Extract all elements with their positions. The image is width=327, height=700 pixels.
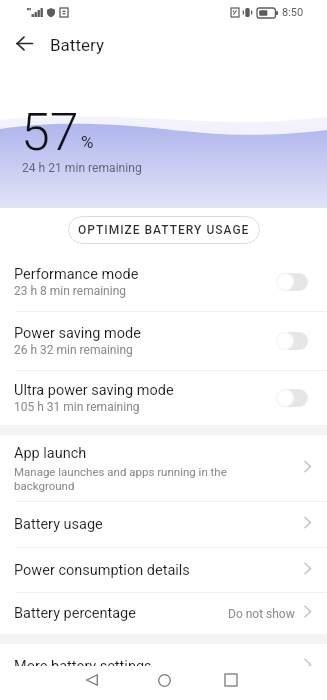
button[interactable]: OPTIMIZE BATTERY USAGE [68, 216, 260, 244]
staticText: OPTIMIZE BATTERY USAGE [78, 223, 250, 237]
staticText: Battery [50, 35, 104, 55]
staticText: Battery percentage [14, 605, 228, 622]
staticText: 24 h 21 min remaining [22, 161, 142, 175]
staticText: 57 [21, 102, 79, 163]
staticText: 26 h 32 min remaining [14, 343, 133, 357]
button[interactable]: App launch [0, 435, 327, 501]
staticText: App launch [14, 445, 87, 462]
staticText: Do not show [228, 607, 295, 621]
staticText: More battery settings [14, 658, 304, 675]
staticText: Manage launches and apps running in the [14, 465, 227, 478]
button[interactable]: Ultra power saving mode [0, 371, 327, 425]
staticText: 23 h 8 min remaining [14, 284, 127, 298]
button[interactable]: Power saving mode [0, 312, 327, 370]
staticText: Power saving mode [14, 325, 141, 342]
staticText: % [81, 132, 94, 152]
button[interactable]: Home [142, 666, 186, 694]
staticText: Performance mode [14, 266, 139, 283]
button[interactable]: Toggle [276, 272, 308, 292]
button[interactable]: Back [8, 27, 41, 60]
staticText: Ultra power saving mode [14, 382, 174, 399]
staticText: Battery usage [14, 516, 304, 533]
button[interactable]: Battery percentage [0, 593, 327, 634]
button[interactable]: Battery usage [0, 502, 327, 547]
button[interactable]: Toggle [276, 331, 308, 351]
button[interactable]: Power consumption details [0, 548, 327, 592]
button[interactable]: Performance mode [0, 252, 327, 311]
staticText: 105 h 31 min remaining [14, 400, 140, 414]
button[interactable]: Toggle [276, 388, 308, 408]
button[interactable]: Back [70, 666, 114, 694]
staticText: Power consumption details [14, 562, 304, 579]
button[interactable]: Recents [209, 666, 253, 694]
button[interactable]: More battery settings [0, 644, 327, 688]
staticText: background [14, 479, 75, 492]
staticText: 8:50 [282, 6, 304, 19]
